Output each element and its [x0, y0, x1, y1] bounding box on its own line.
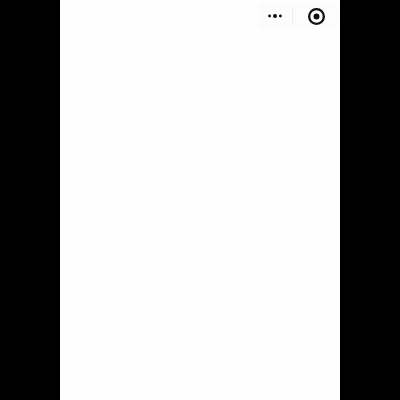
button[interactable]: Record	[293, 2, 339, 30]
button[interactable]: More options	[258, 2, 292, 30]
